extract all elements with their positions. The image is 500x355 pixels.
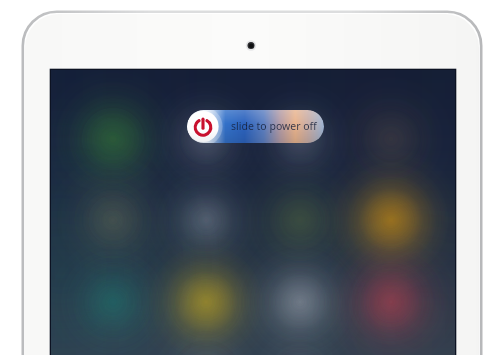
staticText: slide to power off [231,119,317,133]
button[interactable]: Slide to power off [187,110,324,143]
